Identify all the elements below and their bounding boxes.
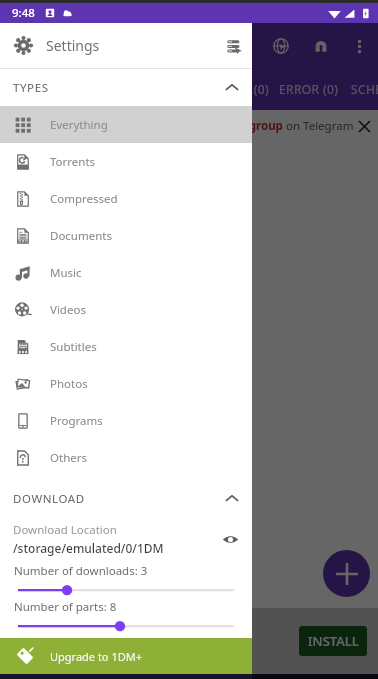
- button[interactable]: Compressed: [0, 180, 252, 217]
- staticText: Number of downloads: 3: [14, 563, 148, 579]
- button[interactable]: Magnet link: [301, 26, 341, 66]
- button[interactable]: DOWNLOAD: [0, 480, 252, 517]
- staticText: ence the fastest of: [12, 641, 121, 658]
- button[interactable]: [18, 579, 234, 597]
- staticText: Torrents: [50, 154, 96, 170]
- button[interactable]: Subtitles: [0, 328, 252, 365]
- button[interactable]: Download Location: [0, 517, 252, 561]
- button[interactable]: Browser: [261, 26, 301, 66]
- staticText: SCHEDULED: [351, 81, 378, 97]
- staticText: RUNNING (0): [191, 81, 269, 97]
- staticText: Everything: [50, 117, 108, 133]
- staticText: Videos: [50, 302, 86, 318]
- button[interactable]: Upgrade to 1DM+: [0, 638, 252, 674]
- button[interactable]: Documents: [0, 217, 252, 254]
- staticText: 9:48: [12, 5, 35, 21]
- button[interactable]: INSTALL: [299, 626, 367, 656]
- button[interactable]: Programs: [0, 402, 252, 439]
- button[interactable]: ERROR (0): [269, 68, 348, 110]
- staticText: Programs: [50, 413, 103, 429]
- staticText: Photos: [50, 376, 88, 392]
- button[interactable]: Settings: [0, 23, 252, 68]
- button[interactable]: [18, 615, 234, 633]
- button[interactable]: Manage servers: [216, 28, 252, 64]
- staticText: Number of parts: 8: [14, 599, 117, 615]
- button[interactable]: RUNNING (0): [190, 68, 269, 110]
- staticText: Others: [50, 450, 87, 466]
- button[interactable]: Everything: [0, 106, 252, 143]
- staticText: Documents: [50, 228, 112, 244]
- button[interactable]: Photos: [0, 365, 252, 402]
- staticText: Join our support group: [153, 118, 283, 134]
- staticText: TYPES: [13, 80, 49, 96]
- staticText: on Telegram: [286, 118, 354, 134]
- button[interactable]: More options: [341, 28, 378, 65]
- button[interactable]: Torrents: [0, 143, 252, 180]
- button[interactable]: TYPES: [0, 69, 252, 106]
- staticText: Download Location: [13, 522, 117, 538]
- button[interactable]: Music: [0, 254, 252, 291]
- staticText: Upgrade to 1DM+: [50, 649, 142, 664]
- staticText: /storage/emulated/0/1DM: [13, 540, 164, 556]
- staticText: Subtitles: [50, 339, 97, 355]
- staticText: DOWNLOAD: [13, 491, 85, 507]
- button[interactable]: FINISHED (0): [111, 68, 190, 110]
- button[interactable]: Show download location: [216, 525, 244, 553]
- staticText: Video downloader experi-: [12, 624, 163, 641]
- staticText: ERROR (0): [279, 81, 339, 97]
- button[interactable]: Videos: [0, 291, 252, 328]
- button[interactable]: SCHEDULED: [348, 68, 378, 110]
- staticText: INSTALL: [308, 632, 359, 650]
- button[interactable]: Close banner: [354, 115, 374, 137]
- staticText: Compressed: [50, 191, 118, 207]
- staticText: Music: [50, 265, 82, 281]
- button[interactable]: Others: [0, 439, 252, 476]
- staticText: Settings: [46, 36, 100, 55]
- button[interactable]: Add new download: [323, 550, 370, 597]
